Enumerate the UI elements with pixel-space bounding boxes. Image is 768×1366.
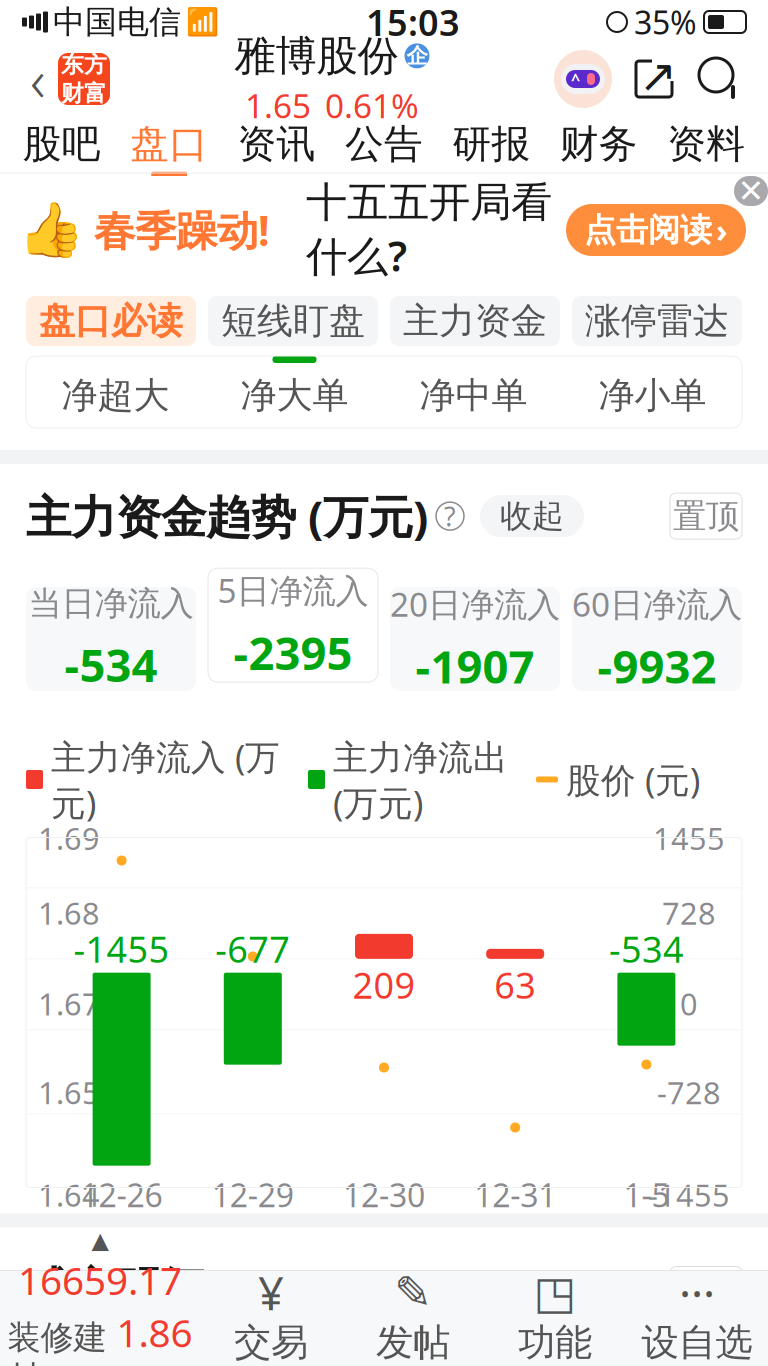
button[interactable]: 5日净流入 xyxy=(208,568,378,709)
staticText: 35% xyxy=(634,1,697,43)
staticText: 净大单 xyxy=(240,373,348,418)
staticText: 1.65 xyxy=(245,83,311,128)
button[interactable]: 研报 xyxy=(438,116,545,172)
button[interactable]: 60日净流入 xyxy=(572,587,742,691)
staticText: -2395 xyxy=(233,622,352,682)
staticText: 主力净流入 (万元) xyxy=(51,733,280,825)
staticText: 成交量 xyxy=(421,1341,526,1366)
staticText: 盘口必读 xyxy=(39,299,183,343)
button[interactable]: 说明 xyxy=(436,502,464,530)
button[interactable]: 财务 xyxy=(545,116,652,172)
button[interactable]: 东方财富 xyxy=(58,53,110,105)
button[interactable]: 净中单 xyxy=(384,356,563,428)
button[interactable]: 资讯 xyxy=(223,116,330,172)
staticText: 收起 xyxy=(500,496,564,536)
staticText: ▲ xyxy=(91,1228,108,1253)
staticText: 公告 xyxy=(345,120,423,168)
button[interactable]: ◳ xyxy=(484,1271,626,1366)
button[interactable]: 置顶 xyxy=(670,1266,742,1312)
staticText: 16659.17 xyxy=(18,1254,182,1306)
button[interactable]: 搜索 xyxy=(696,55,744,103)
staticText: -534 xyxy=(64,634,157,694)
staticText: 主力净流出 (万元) xyxy=(333,733,508,825)
staticText: 当日净流入 xyxy=(28,583,193,624)
staticText: 净中单 xyxy=(419,373,527,418)
staticText: -1455 xyxy=(648,1175,730,1215)
staticText: 十五五开局看什么? xyxy=(306,177,552,283)
button[interactable]: 涨停雷达 xyxy=(572,296,742,346)
button[interactable]: 智能助手 xyxy=(554,50,612,108)
staticText: 20日净流入 xyxy=(390,582,560,626)
button[interactable]: 股吧 xyxy=(8,116,115,172)
staticText: 1.68 xyxy=(38,892,100,933)
button[interactable]: 净小单 xyxy=(563,356,742,428)
staticText: 点击阅读 xyxy=(584,210,712,250)
button[interactable]: ¥ xyxy=(200,1271,342,1366)
staticText: 资料 xyxy=(667,120,745,168)
staticText: 研报 xyxy=(452,120,530,168)
staticText: 功能 xyxy=(518,1320,592,1365)
button[interactable]: 20日净流入 xyxy=(390,587,560,691)
staticText: 📶 xyxy=(186,7,219,37)
staticText: -1907 xyxy=(415,636,534,696)
staticText: 雅博股份 xyxy=(234,30,398,81)
button[interactable]: 公告 xyxy=(330,116,438,172)
button[interactable]: 盘口必读 xyxy=(26,296,196,346)
button[interactable]: 盘口 xyxy=(115,116,223,172)
button[interactable]: 装修建材指数 xyxy=(0,1228,200,1366)
staticText: 60日净流入 xyxy=(572,582,742,626)
staticText: 63 xyxy=(494,961,536,1009)
staticText: 1.69 xyxy=(38,818,100,858)
staticText: ··· xyxy=(679,1262,715,1323)
staticText: 企 xyxy=(406,43,427,69)
staticText: 主力资金 xyxy=(403,299,547,343)
button[interactable]: 当日净流入 xyxy=(26,587,196,691)
button[interactable]: 短线盯盘 xyxy=(208,296,378,346)
button[interactable]: 净大单 xyxy=(205,356,384,428)
staticText: 置顶 xyxy=(673,1269,739,1310)
staticText: 0.61% xyxy=(325,83,419,128)
staticText: 股价 (元) xyxy=(566,756,700,802)
staticText: 1.64 xyxy=(38,1175,100,1215)
staticText: -677 xyxy=(215,925,290,973)
staticText: ‹ xyxy=(30,40,46,118)
staticText: 1.67 xyxy=(38,983,100,1024)
staticText: 涨停雷达 xyxy=(585,299,729,343)
staticText: 15:03 xyxy=(366,0,460,46)
button[interactable]: 置顶 xyxy=(670,493,742,539)
staticText: 0 xyxy=(680,983,698,1024)
staticText: 主力资金趋势 (万元) xyxy=(26,486,428,546)
staticText: 12-31 xyxy=(474,1174,556,1216)
button[interactable]: 点击阅读 xyxy=(566,204,746,256)
button[interactable]: 主力资金 xyxy=(390,296,560,346)
button[interactable]: ✎ xyxy=(342,1271,484,1366)
button[interactable]: ··· xyxy=(626,1271,768,1366)
button[interactable]: 净超大 xyxy=(26,356,205,428)
staticText: 👍 xyxy=(18,199,84,260)
staticText: ¥ xyxy=(258,1262,284,1323)
staticText: 股吧 xyxy=(23,120,101,168)
staticText: 盘口 xyxy=(130,120,208,168)
staticText: 春季躁动! xyxy=(94,203,270,257)
staticText: 728 xyxy=(662,892,716,933)
staticText: ▼ xyxy=(284,682,302,709)
staticText: › xyxy=(716,209,728,251)
staticText: ◳ xyxy=(533,1267,576,1318)
staticText: ^ xyxy=(571,68,580,90)
staticText: 短线盯盘 xyxy=(221,299,365,343)
button[interactable]: 资料 xyxy=(653,116,760,172)
staticText: 12-30 xyxy=(343,1174,425,1216)
staticText: ↗ xyxy=(639,50,677,102)
staticText: 12-26 xyxy=(81,1174,163,1216)
staticText: 时间 xyxy=(80,1341,150,1366)
button[interactable]: 关闭广告 xyxy=(734,176,768,206)
button[interactable]: 返回 xyxy=(18,48,58,110)
button[interactable]: 收起 xyxy=(480,495,584,537)
staticText: 发帖 xyxy=(376,1320,450,1365)
staticText: -534 xyxy=(609,925,684,973)
button[interactable]: 分享 xyxy=(630,55,678,103)
staticText: 交易 xyxy=(234,1320,308,1365)
staticText: -9932 xyxy=(597,636,716,696)
staticText: 成交价 xyxy=(242,1341,347,1366)
staticText: 12-29 xyxy=(212,1174,294,1216)
